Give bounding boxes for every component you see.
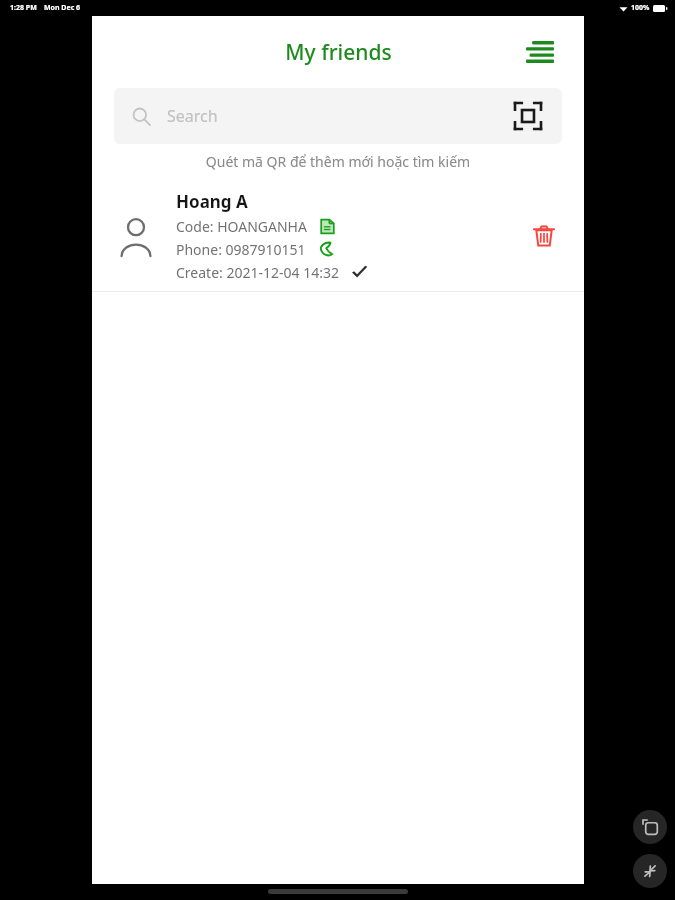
staticText: 100% — [631, 3, 650, 13]
button[interactable]: Delete — [522, 214, 566, 258]
staticText: My friends — [285, 38, 392, 67]
button[interactable]: Collapse — [633, 854, 667, 888]
staticText: Quét mã QR để thêm mới hoặc tìm kiếm — [92, 152, 584, 171]
button[interactable]: Hoang A — [92, 181, 584, 291]
button[interactable]: Screenshot — [633, 810, 667, 844]
staticText: Search — [167, 105, 218, 127]
button[interactable]: Scan QR code — [508, 96, 548, 136]
staticText: Code: HOANGANHA — [176, 217, 307, 236]
staticText: Mon Dec 6 — [44, 3, 81, 13]
button[interactable]: Call — [316, 239, 336, 259]
staticText: Create: 2021-12-04 14:32 — [176, 263, 339, 282]
staticText: Phone: 0987910151 — [176, 240, 306, 259]
button[interactable]: Search — [114, 88, 562, 144]
button[interactable]: Menu — [518, 30, 562, 74]
staticText: Hoang A — [176, 190, 248, 213]
staticText: 1:28 PM — [10, 3, 37, 13]
button[interactable]: Copy code — [317, 216, 337, 236]
